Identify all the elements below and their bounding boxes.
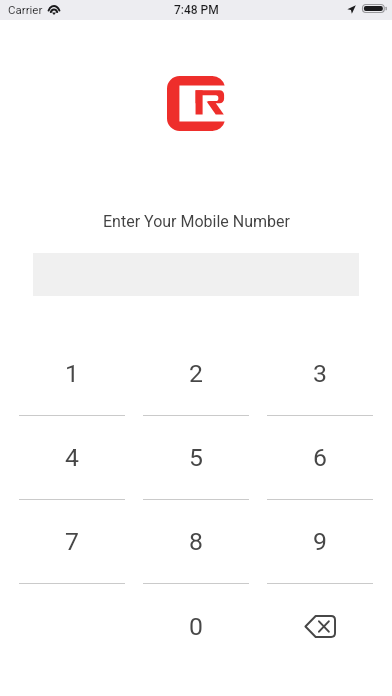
staticText: Enter Your Mobile Number [103, 212, 290, 231]
staticText: 0 [189, 612, 203, 641]
staticText: 5 [189, 443, 203, 472]
staticText: 2 [189, 359, 203, 388]
staticText: 9 [313, 527, 327, 556]
staticText: 7:48 PM [174, 3, 219, 17]
button[interactable]: 7 [10, 500, 134, 583]
staticText: 8 [189, 527, 203, 556]
staticText: 1 [65, 359, 79, 388]
staticText: 6 [313, 443, 327, 472]
button[interactable]: 9 [258, 500, 382, 583]
button[interactable]: 1 [10, 332, 134, 415]
staticText: 3 [313, 359, 327, 388]
button[interactable]: 5 [134, 416, 258, 499]
button[interactable]: 4 [10, 416, 134, 499]
button[interactable]: 6 [258, 416, 382, 499]
button[interactable]: 3 [258, 332, 382, 415]
staticText: Carrier [8, 3, 43, 16]
button[interactable]: 2 [134, 332, 258, 415]
button[interactable]: 0 [134, 584, 258, 668]
button[interactable]: 8 [134, 500, 258, 583]
staticText: 4 [65, 443, 79, 472]
button[interactable]: Delete last digit [258, 584, 382, 668]
staticText: 7 [65, 527, 79, 556]
